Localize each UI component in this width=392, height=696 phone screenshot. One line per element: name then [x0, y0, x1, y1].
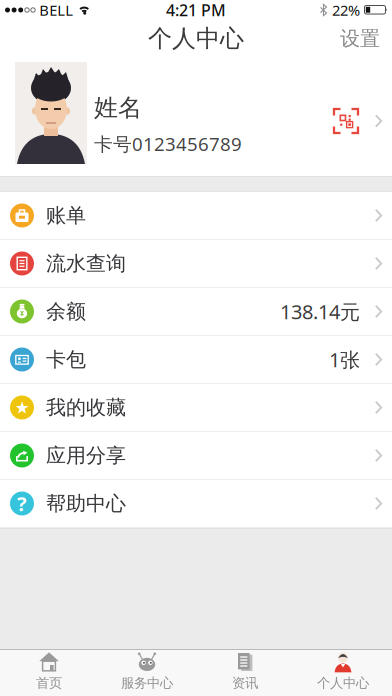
- staticText: 22%: [332, 0, 360, 20]
- staticText: 4:21 PM: [166, 0, 226, 21]
- button[interactable]: 首页: [0, 650, 98, 696]
- button[interactable]: 设置: [340, 26, 380, 51]
- staticText: 应用分享: [46, 443, 126, 468]
- staticText: 账单: [46, 203, 86, 228]
- staticText: 1张: [329, 346, 360, 373]
- button[interactable]: 资讯: [196, 650, 294, 696]
- staticText: 138.14元: [280, 298, 360, 325]
- staticText: 个人中心: [148, 24, 244, 53]
- staticText: 设置: [340, 26, 380, 51]
- staticText: 帮助中心: [46, 491, 126, 516]
- button[interactable]: 应用分享: [0, 432, 392, 480]
- button[interactable]: ?: [0, 480, 392, 528]
- button[interactable]: 姓名: [0, 57, 392, 176]
- staticText: BELL: [39, 0, 73, 20]
- button[interactable]: 流水查询: [0, 240, 392, 288]
- staticText: 资讯: [232, 675, 258, 691]
- staticText: 首页: [36, 675, 62, 691]
- button[interactable]: 服务中心: [98, 650, 196, 696]
- staticText: 我的收藏: [46, 395, 126, 420]
- button[interactable]: 个人中心: [294, 650, 392, 696]
- button[interactable]: 卡包: [0, 336, 392, 384]
- staticText: 个人中心: [317, 675, 369, 691]
- staticText: ?: [17, 490, 27, 517]
- staticText: 姓名: [94, 93, 142, 122]
- button[interactable]: 我的收藏: [0, 384, 392, 432]
- staticText: 余额: [46, 299, 86, 324]
- staticText: 流水查询: [46, 251, 126, 276]
- staticText: 服务中心: [121, 675, 173, 691]
- button[interactable]: 账单: [0, 192, 392, 240]
- staticText: 卡号0123456789: [94, 131, 242, 156]
- button[interactable]: 余额: [0, 288, 392, 336]
- staticText: 卡包: [46, 347, 86, 372]
